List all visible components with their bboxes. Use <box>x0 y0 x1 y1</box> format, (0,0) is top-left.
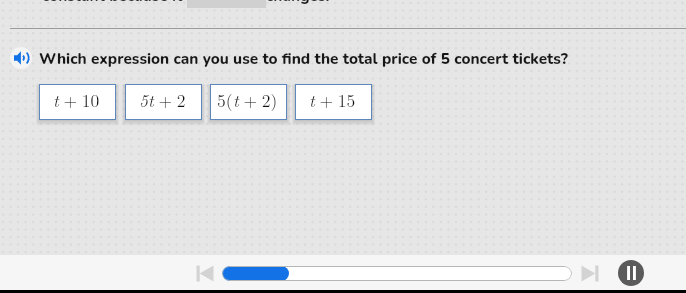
staticText: 5t <box>139 87 154 112</box>
button[interactable]: Play audio <box>10 47 32 69</box>
staticText: + 15 <box>315 87 356 112</box>
staticText: constant because it <box>42 0 183 6</box>
button[interactable]: Pause <box>618 260 644 286</box>
staticText: + 2 <box>154 87 186 112</box>
staticText: + 2) <box>239 87 278 112</box>
staticText: + 10 <box>59 87 100 112</box>
button[interactable]: t <box>39 84 116 120</box>
staticText: 5( <box>217 87 233 112</box>
staticText: changes. <box>266 0 330 6</box>
button[interactable]: Skip to end <box>581 265 599 282</box>
button[interactable]: Audio progress <box>222 266 572 281</box>
staticText: Which expression can you use to find the… <box>39 48 568 69</box>
staticText: t <box>233 87 239 112</box>
button[interactable]: 5( <box>210 84 287 120</box>
staticText: t <box>53 87 59 112</box>
button[interactable]: Skip to start <box>196 265 214 282</box>
button[interactable]: t <box>295 84 372 120</box>
staticText: t <box>309 87 315 112</box>
button[interactable]: 5t <box>125 84 202 120</box>
